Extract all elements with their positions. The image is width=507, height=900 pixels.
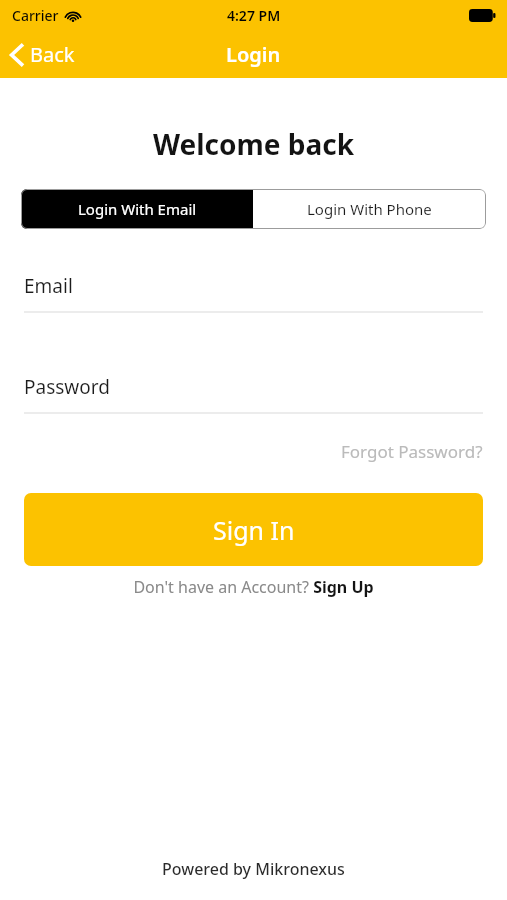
staticText: Welcome back <box>153 125 355 163</box>
staticText: Login <box>226 41 281 68</box>
staticText: Email <box>24 273 73 299</box>
staticText: Powered by Mikronexus <box>162 858 345 880</box>
staticText: Forgot Password? <box>341 440 483 463</box>
staticText: Login With Phone <box>307 199 432 219</box>
button[interactable]: Password <box>24 374 483 414</box>
staticText: Back <box>30 41 75 68</box>
staticText: 4:27 PM <box>227 6 281 25</box>
button[interactable]: Don't have an Account? Sign Up <box>125 574 382 600</box>
staticText: Carrier <box>12 6 59 25</box>
button[interactable]: Back <box>0 35 89 74</box>
button[interactable]: Email <box>24 273 483 313</box>
button[interactable]: Login With Phone <box>253 189 486 229</box>
button[interactable]: Forgot Password? <box>337 436 487 467</box>
button[interactable]: Login With Email <box>21 189 253 229</box>
staticText: Password <box>24 374 110 400</box>
staticText: Sign In <box>213 513 295 547</box>
staticText: Login With Email <box>78 199 197 219</box>
button[interactable]: Sign In <box>24 493 483 566</box>
staticText: Don't have an Account? Sign Up <box>133 576 374 598</box>
